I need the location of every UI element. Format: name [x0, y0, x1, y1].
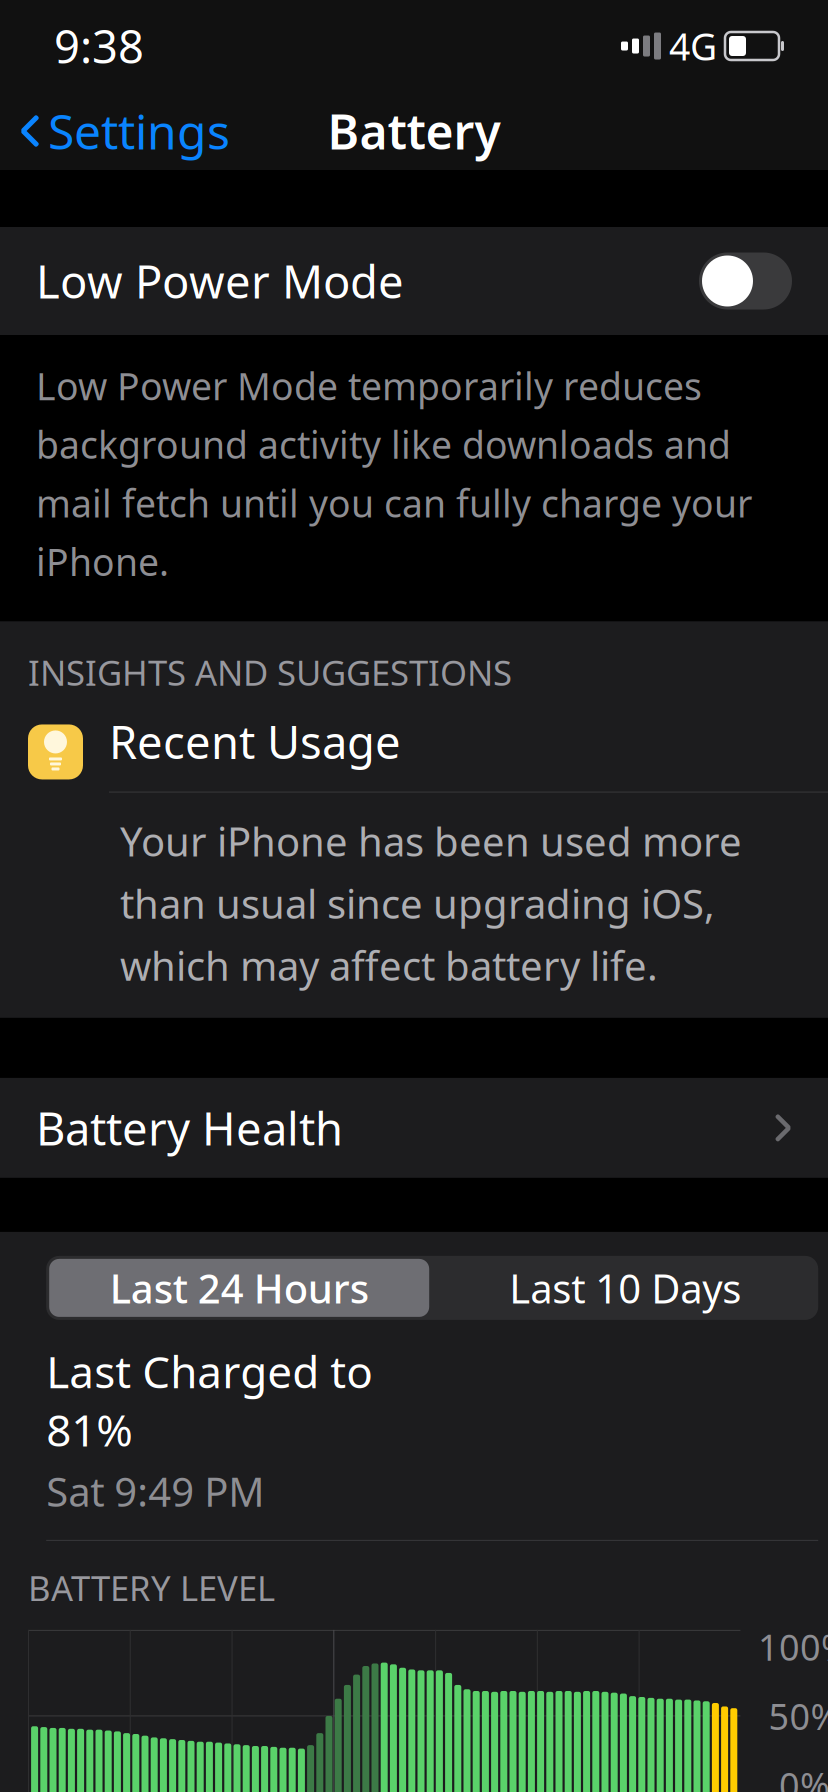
button[interactable]: Recent Usage	[0, 711, 828, 1018]
staticText: Last 10 Days	[509, 1261, 741, 1314]
staticText: 50%	[768, 1692, 828, 1740]
staticText: Settings	[48, 99, 230, 163]
staticText: Recent Usage	[109, 711, 401, 771]
staticText: Sat 9:49 PM	[46, 1465, 264, 1518]
staticText: 0%	[779, 1761, 828, 1792]
staticText: 100%	[758, 1623, 828, 1671]
staticText: Last 24 Hours	[110, 1261, 369, 1314]
staticText: Your iPhone has been used more than usua…	[120, 814, 742, 992]
staticText: Battery Health	[36, 1098, 343, 1158]
button[interactable]: Last 10 Days	[432, 1256, 818, 1320]
staticText: 4G	[669, 21, 717, 71]
button[interactable]: Last 24 Hours	[46, 1256, 432, 1320]
staticText: Battery	[327, 99, 500, 163]
button[interactable]: Low Power Mode	[0, 227, 828, 335]
staticText: BATTERY LEVEL	[28, 1565, 275, 1611]
staticText: Low Power Mode	[36, 251, 404, 311]
staticText: INSIGHTS AND SUGGESTIONS	[28, 649, 512, 695]
button[interactable]: Settings	[0, 89, 230, 173]
staticText: 9:38	[54, 16, 144, 76]
button[interactable]: Battery Health	[0, 1078, 828, 1178]
staticText: Last Charged to 81%	[46, 1342, 373, 1459]
staticText: Low Power Mode temporarily reduces backg…	[36, 361, 752, 586]
